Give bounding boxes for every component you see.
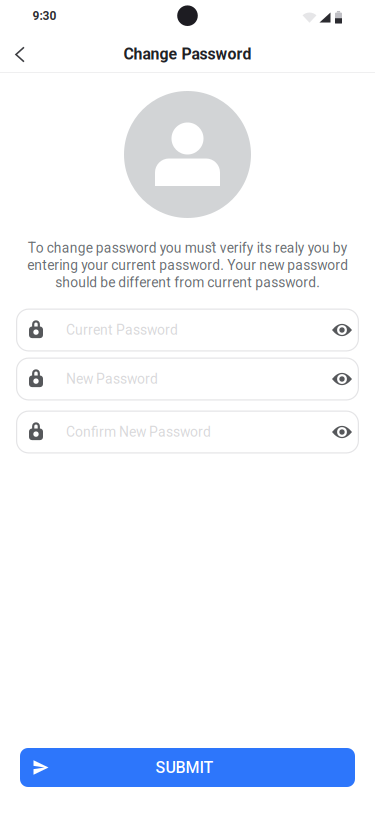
button[interactable]: Show password <box>332 324 359 336</box>
staticText: Current Password <box>66 322 178 338</box>
staticText: Change Password <box>123 45 251 63</box>
button[interactable]: Back <box>0 34 40 74</box>
staticText: 9:30 <box>32 9 56 23</box>
button[interactable]: Show password <box>332 426 359 438</box>
button[interactable]: New Password <box>0 357 375 400</box>
button[interactable]: Submit <box>0 748 375 787</box>
staticText: New Password <box>66 371 158 387</box>
staticText: Confirm New Password <box>66 424 211 440</box>
staticText: SUBMIT <box>155 758 213 777</box>
staticText: To change password you must̂ verify its … <box>27 240 348 290</box>
button[interactable]: Confirm New Password <box>0 410 375 453</box>
button[interactable]: Current Password <box>0 308 375 351</box>
button[interactable]: Show password <box>332 373 359 385</box>
